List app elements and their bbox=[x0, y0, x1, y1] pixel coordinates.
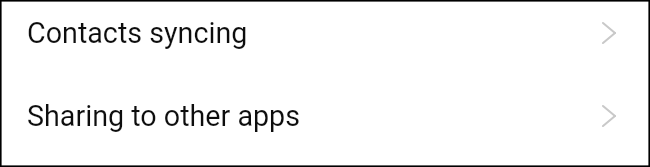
staticText: Sharing to other apps bbox=[27, 99, 301, 133]
button[interactable]: Sharing to other apps bbox=[0, 83, 650, 166]
other: Open Sharing to other apps bbox=[602, 105, 616, 127]
button[interactable]: Contacts syncing bbox=[0, 0, 650, 83]
other: Open Contacts syncing bbox=[602, 22, 616, 44]
staticText: Contacts syncing bbox=[27, 16, 248, 50]
